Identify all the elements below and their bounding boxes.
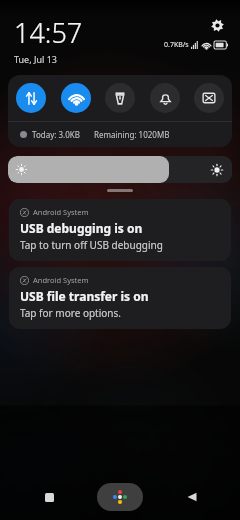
button[interactable]: Back <box>170 480 214 514</box>
staticText: Remaining: 1020MB <box>94 129 170 140</box>
staticText: Today: 3.0KB <box>32 129 80 140</box>
button[interactable]: Recents <box>27 480 71 514</box>
staticText: Android System <box>33 207 89 217</box>
button[interactable]: Assistant <box>97 483 143 511</box>
staticText: 14:57 <box>14 14 83 51</box>
staticText: Tap to turn off USB debugging <box>20 238 163 252</box>
button[interactable]: Silent mode <box>150 83 180 113</box>
staticText: 0.7KB/s <box>164 40 189 50</box>
button[interactable]: Android System <box>9 199 231 261</box>
staticText: Android System <box>33 275 89 285</box>
staticText: Tue, Jul 13 <box>14 53 57 65</box>
button[interactable] <box>8 156 232 183</box>
button[interactable]: Settings <box>206 14 228 36</box>
staticText: Tap for more options. <box>20 306 121 320</box>
button[interactable]: Wi-Fi <box>61 83 91 113</box>
button[interactable]: Mobile data <box>16 83 46 113</box>
button[interactable]: Today: 3.0KB <box>8 122 232 147</box>
button[interactable]: Android System <box>9 267 231 329</box>
button[interactable]: Flashlight <box>105 83 135 113</box>
button[interactable]: Screenshot <box>194 83 224 113</box>
staticText: USB file transfer is on <box>20 288 149 304</box>
staticText: USB debugging is on <box>20 220 143 236</box>
